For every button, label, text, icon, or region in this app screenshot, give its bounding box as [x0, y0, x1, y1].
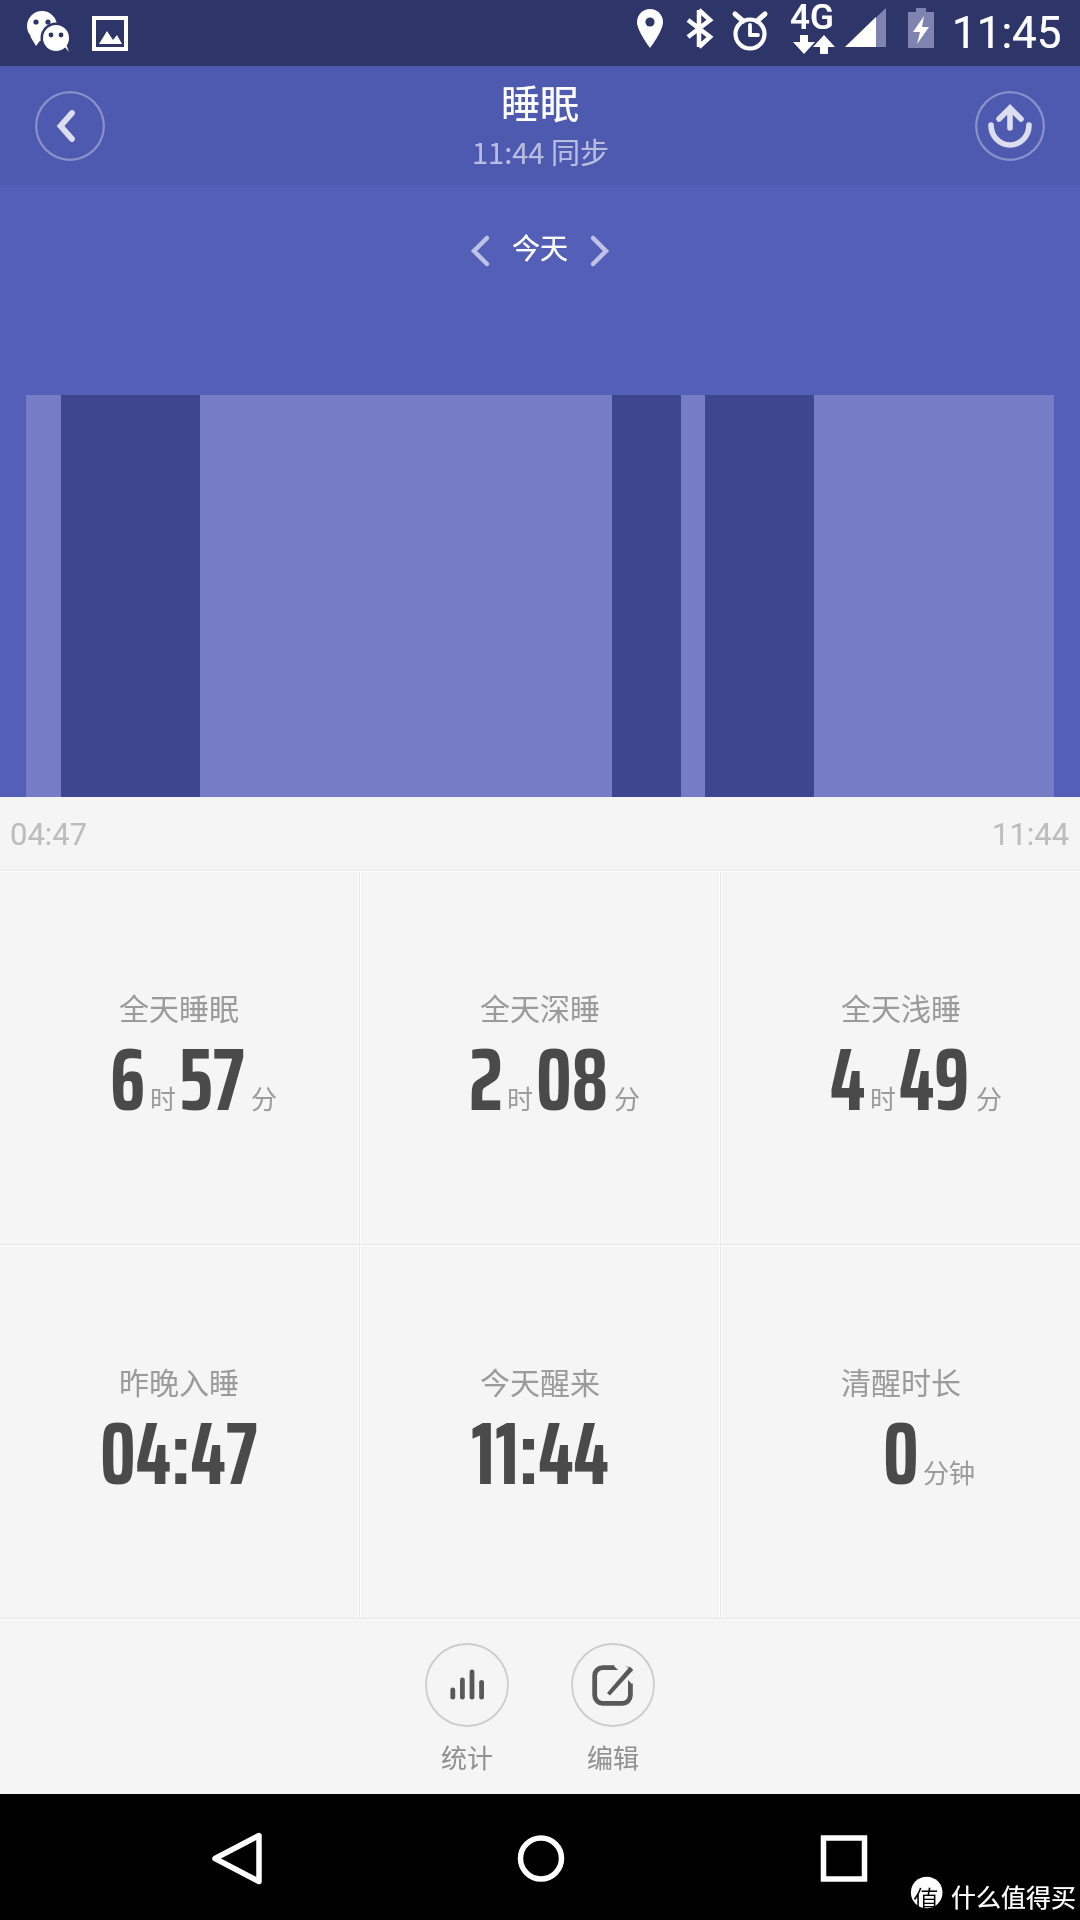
staticText: 11:44 [992, 816, 1070, 852]
staticText: 时 [150, 1079, 177, 1117]
staticText: 6 [110, 1008, 146, 1149]
staticText: 统计 [441, 1738, 494, 1776]
staticText: 分 [614, 1079, 641, 1117]
button[interactable]: Today [440, 197, 640, 269]
staticText: 04:47 [10, 816, 88, 852]
staticText: 分钟 [923, 1453, 976, 1491]
staticText: 11:45 [952, 7, 1062, 59]
staticText: 时 [507, 1079, 534, 1117]
staticText: 值 [913, 1880, 940, 1918]
button[interactable]: 全天睡眠 [0, 872, 358, 1244]
staticText: 今天醒来 [480, 1359, 600, 1402]
button[interactable]: Back [35, 91, 105, 161]
staticText: 全天深睡 [480, 985, 600, 1028]
staticText: 今天 [512, 227, 569, 268]
staticText: 昨晚入睡 [119, 1359, 239, 1402]
staticText: 时 [870, 1079, 897, 1117]
button[interactable]: 全天浅睡 [722, 872, 1080, 1244]
button[interactable]: 全天深睡 [361, 872, 719, 1244]
staticText: 全天浅睡 [841, 985, 961, 1028]
staticText: 11:44 [471, 1382, 609, 1523]
button[interactable]: 统计 [422, 1638, 512, 1778]
staticText: 49 [899, 1008, 970, 1149]
staticText: 08 [536, 1008, 608, 1149]
staticText: 分 [251, 1079, 278, 1117]
button[interactable]: 清醒时长 [722, 1246, 1080, 1618]
staticText: 什么值得买 [951, 1878, 1077, 1914]
staticText: 2 [469, 1008, 503, 1149]
button[interactable]: 今天醒来 [361, 1246, 719, 1618]
staticText: 全天睡眠 [119, 985, 239, 1028]
staticText: 4 [830, 1008, 866, 1149]
button[interactable]: Share [975, 91, 1045, 161]
staticText: 11:44 同步 [472, 130, 609, 172]
staticText: 清醒时长 [841, 1359, 961, 1402]
staticText: 分 [976, 1079, 1003, 1117]
staticText: 0 [883, 1382, 919, 1523]
button[interactable]: 编辑 [568, 1638, 658, 1778]
staticText: 编辑 [587, 1738, 640, 1776]
staticText: 4G [790, 0, 834, 38]
button[interactable]: 昨晚入睡 [0, 1246, 358, 1618]
staticText: 57 [179, 1008, 245, 1149]
staticText: 04:47 [100, 1382, 258, 1523]
staticText: 睡眠 [501, 73, 580, 129]
